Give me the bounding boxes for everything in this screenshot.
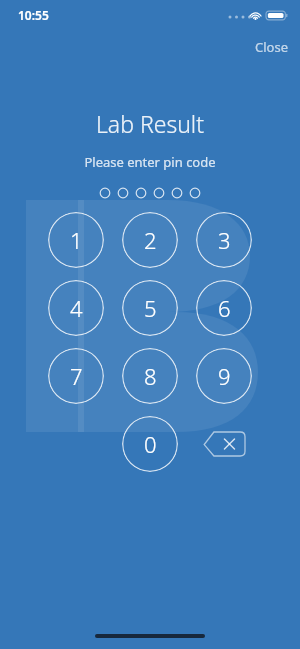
staticText: 7: [70, 361, 83, 391]
staticText: 8: [144, 361, 157, 391]
button[interactable]: 8: [122, 348, 178, 404]
button[interactable]: 2: [122, 212, 178, 268]
button[interactable]: 5: [122, 280, 178, 336]
staticText: 2: [144, 225, 157, 255]
staticText: 1: [70, 225, 83, 255]
staticText: 5: [144, 293, 157, 323]
button[interactable]: Close: [243, 33, 300, 61]
button[interactable]: 7: [48, 348, 104, 404]
staticText: 9: [218, 361, 231, 391]
button[interactable]: 9: [196, 348, 252, 404]
button[interactable]: 4: [48, 280, 104, 336]
staticText: 3: [218, 225, 231, 255]
button[interactable]: 0: [122, 416, 178, 472]
staticText: 10:55: [18, 7, 49, 23]
staticText: 6: [218, 293, 231, 323]
staticText: Close: [255, 38, 288, 56]
button[interactable]: 1: [48, 212, 104, 268]
staticText: Lab Result: [0, 108, 300, 139]
button[interactable]: 3: [196, 212, 252, 268]
staticText: Please enter pin code: [0, 153, 300, 171]
button[interactable]: 6: [196, 280, 252, 336]
button[interactable]: Delete: [196, 416, 252, 472]
staticText: 4: [70, 293, 83, 323]
staticText: 0: [144, 429, 157, 459]
